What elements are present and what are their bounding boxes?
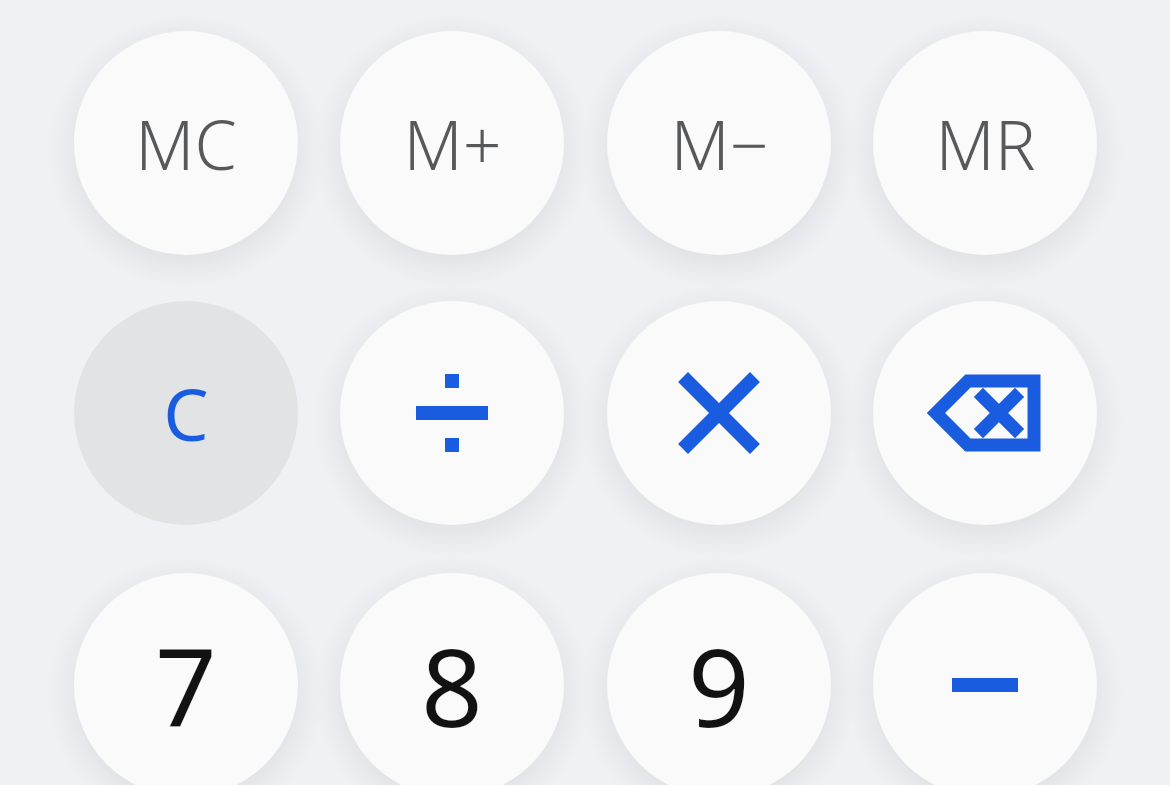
button[interactable]: MR	[873, 31, 1097, 255]
staticText: MC	[135, 97, 237, 190]
button[interactable]: Multiply	[607, 301, 831, 525]
button[interactable]: M+	[340, 31, 564, 255]
staticText: 7	[155, 612, 217, 759]
button[interactable]: 9	[607, 573, 831, 785]
staticText: MR	[935, 97, 1036, 190]
staticText: 9	[688, 612, 750, 759]
button[interactable]: MC	[74, 31, 298, 255]
button[interactable]: Divide	[340, 301, 564, 525]
button[interactable]: Backspace	[873, 301, 1097, 525]
button[interactable]: Minus	[873, 573, 1097, 785]
button[interactable]: M−	[607, 31, 831, 255]
staticText: C	[163, 364, 209, 462]
button[interactable]: C	[74, 301, 298, 525]
staticText: 8	[421, 612, 483, 759]
staticText: M+	[403, 97, 502, 190]
staticText: M−	[670, 97, 769, 190]
button[interactable]: 8	[340, 573, 564, 785]
button[interactable]: 7	[74, 573, 298, 785]
